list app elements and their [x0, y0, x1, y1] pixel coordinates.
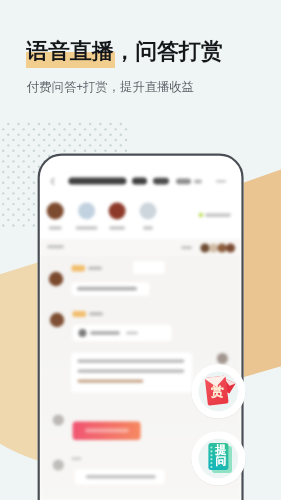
button[interactable]: 提问 [191, 431, 246, 486]
staticText: 赏 [211, 384, 224, 400]
staticText: 问 [215, 454, 226, 468]
staticText: 提 [215, 443, 226, 457]
staticText: 付费问答+打赏，提升直播收益 [27, 78, 194, 95]
staticText: 语音直播，问答打赏 [26, 38, 223, 65]
button[interactable]: 打赏 [191, 364, 246, 419]
